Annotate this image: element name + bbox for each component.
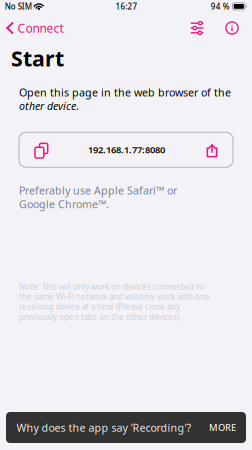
button[interactable]: Connect bbox=[0, 14, 71, 42]
staticText: 16:27 bbox=[116, 1, 138, 12]
button[interactable]: Copy address bbox=[24, 132, 53, 167]
staticText: MORE bbox=[209, 421, 236, 434]
staticText: No SIM bbox=[5, 1, 32, 12]
button[interactable]: Info bbox=[220, 14, 244, 42]
staticText: Why does the app say 'Recording'? bbox=[16, 420, 191, 435]
staticText: 94 % bbox=[211, 1, 230, 12]
staticText: Start bbox=[11, 44, 64, 72]
staticText: Preferably use Apple Safari™ or Google C… bbox=[19, 183, 177, 211]
button[interactable]: Why does the app say 'Recording'? bbox=[6, 412, 246, 443]
button[interactable]: Share address bbox=[200, 132, 229, 167]
staticText: Note: This will only work on devices con… bbox=[19, 281, 210, 322]
staticText: 192.168.1.77:8080 bbox=[88, 144, 165, 156]
staticText: Open this page in the web browser of the… bbox=[19, 85, 231, 113]
button[interactable]: Settings bbox=[185, 14, 209, 42]
staticText: Connect bbox=[17, 20, 63, 36]
